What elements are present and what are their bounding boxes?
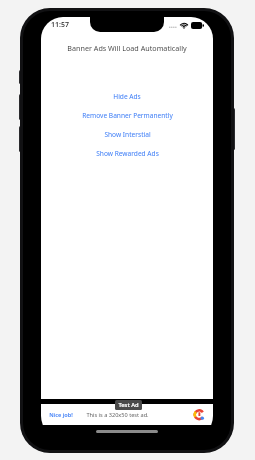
button[interactable]: Show Interstial [41, 129, 213, 140]
staticText: Remove Banner Permanently [82, 111, 173, 120]
other: Google Ads [194, 409, 205, 420]
staticText: Nice job! [49, 411, 73, 419]
staticText: This is a 320x50 test ad. [86, 411, 149, 419]
button[interactable]: Remove Banner Permanently [41, 110, 213, 121]
staticText: Test Ad [118, 401, 139, 409]
staticText: Show Interstial [104, 130, 151, 139]
button[interactable]: Hide Ads [41, 91, 213, 102]
button[interactable]: Show Rewarded Ads [41, 148, 213, 159]
staticText: 11:57 [51, 20, 69, 30]
button[interactable]: Nice job! [41, 404, 213, 425]
staticText: Hide Ads [113, 92, 141, 101]
staticText: Show Rewarded Ads [96, 149, 159, 158]
staticText: Banner Ads Will Load Automatically [41, 43, 213, 53]
